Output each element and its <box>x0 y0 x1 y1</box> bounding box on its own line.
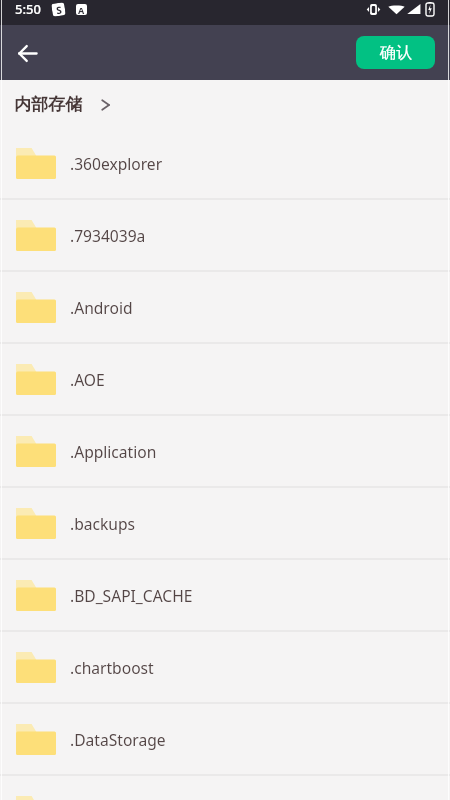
staticText: .Application <box>70 441 157 462</box>
button[interactable]: .backups <box>0 488 450 560</box>
button[interactable]: Back <box>6 32 48 74</box>
button[interactable]: .chartboost <box>0 632 450 704</box>
staticText: .360explorer <box>70 153 163 174</box>
button[interactable]: .360explorer <box>0 128 450 200</box>
staticText: .Android <box>70 297 133 318</box>
staticText: .chartboost <box>70 657 154 678</box>
staticText: 5:50 <box>15 0 41 18</box>
button[interactable]: .7934039a <box>0 200 450 272</box>
button[interactable]: .DataStorage <box>0 704 450 776</box>
button[interactable]: 确认 <box>356 36 435 69</box>
staticText: S <box>55 3 63 16</box>
staticText: 内部存储 <box>14 94 82 115</box>
staticText: .AOE <box>70 369 105 390</box>
staticText: A <box>78 4 85 15</box>
button[interactable]: 内部存储 <box>14 94 111 115</box>
button[interactable]: .Dcim <box>0 776 450 800</box>
staticText: .7934039a <box>70 225 146 246</box>
staticText: .DataStorage <box>70 729 166 750</box>
staticText: 确认 <box>380 43 412 63</box>
button[interactable]: .Android <box>0 272 450 344</box>
button[interactable]: .BD_SAPI_CACHE <box>0 560 450 632</box>
button[interactable]: .Application <box>0 416 450 488</box>
button[interactable]: .AOE <box>0 344 450 416</box>
staticText: .backups <box>70 513 136 534</box>
staticText: .BD_SAPI_CACHE <box>70 585 193 606</box>
